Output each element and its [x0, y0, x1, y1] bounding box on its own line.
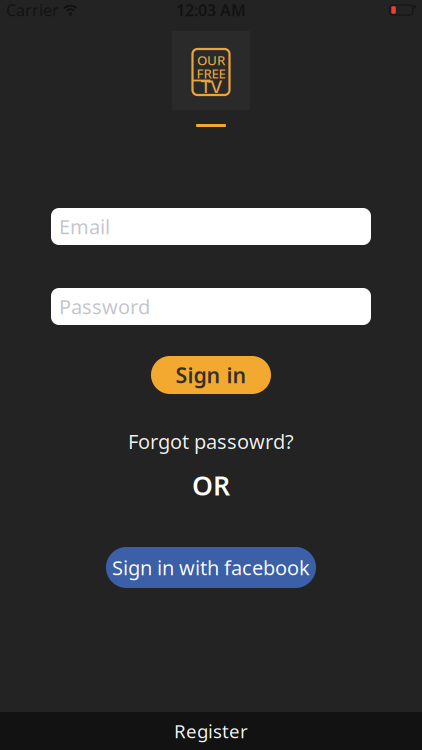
staticText: TV [200, 74, 221, 99]
staticText: Register [174, 719, 248, 743]
button[interactable]: Email [51, 208, 371, 245]
staticText: Forgot passowrd? [128, 428, 294, 455]
staticText: Sign in with facebook [112, 554, 310, 581]
button[interactable]: Sign in [151, 356, 271, 394]
button[interactable]: Forgot passowrd? [128, 428, 294, 455]
staticText: OUR [197, 51, 225, 69]
staticText: Carrier [6, 0, 59, 21]
staticText: Email [59, 213, 110, 240]
button[interactable]: Sign in with facebook [106, 547, 316, 588]
button[interactable]: Password [51, 288, 371, 325]
button[interactable]: Register [0, 712, 422, 750]
staticText: FREE [196, 64, 225, 82]
staticText: Sign in [175, 361, 246, 389]
staticText: OR [192, 468, 230, 503]
staticText: 12:03 AM [176, 0, 246, 21]
staticText: Password [59, 293, 150, 320]
